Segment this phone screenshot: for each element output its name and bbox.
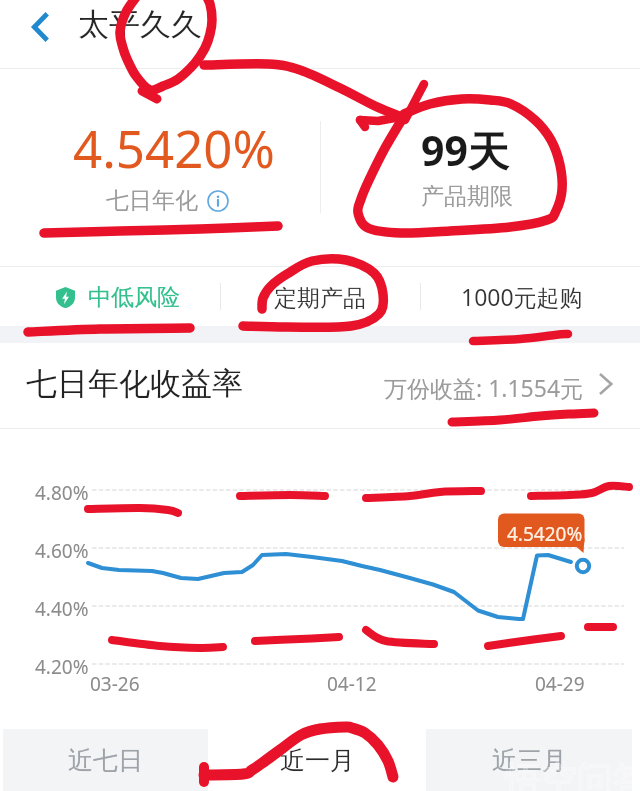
staticText: 近七日 — [68, 745, 143, 776]
staticText: 4.20% — [35, 654, 89, 680]
button[interactable]: 近七日 — [3, 729, 208, 791]
staticText: 中低风险 — [88, 283, 180, 312]
staticText: 万份收益: 1.1554元 — [384, 372, 584, 403]
staticText: 七日年化收益率 — [26, 364, 243, 403]
staticText: 近一月 — [280, 745, 355, 776]
staticText: 04-12 — [327, 671, 377, 697]
staticText: 4.40% — [35, 596, 89, 622]
button[interactable]: 近三月 — [426, 729, 632, 791]
staticText: 4.80% — [35, 480, 89, 506]
button[interactable]: 近一月 — [214, 729, 420, 791]
staticText: 4.5420% — [507, 521, 583, 547]
button[interactable]: 中低风险 — [56, 283, 180, 312]
button[interactable]: 七日年化 — [106, 186, 229, 215]
staticText: 4.5420% — [73, 113, 275, 182]
button[interactable]: 七日年化收益率 — [0, 343, 640, 428]
staticText: 七日年化 — [106, 186, 198, 215]
staticText: 产品期限 — [421, 182, 513, 211]
staticText: 近三月 — [492, 745, 567, 776]
staticText: 04-29 — [535, 671, 585, 697]
staticText: 悟空问答 — [505, 757, 640, 791]
button[interactable]: 1000元起购 — [461, 281, 583, 312]
staticText: 4.60% — [35, 538, 89, 564]
staticText: 99天 — [421, 122, 509, 178]
button[interactable]: Back — [19, 6, 61, 48]
button[interactable]: 定期产品 — [274, 284, 366, 313]
staticText: 03-26 — [90, 671, 140, 697]
staticText: 太平久久 — [78, 5, 202, 44]
